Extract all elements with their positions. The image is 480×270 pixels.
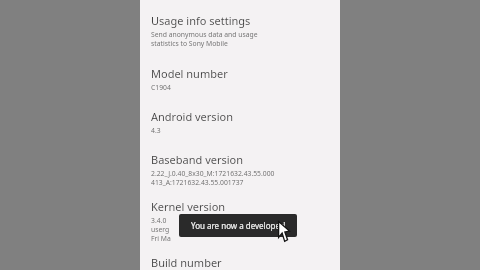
button[interactable]: Usage info settings [151, 13, 335, 48]
staticText: userg [151, 225, 170, 234]
staticText: You are now a developer! [191, 220, 286, 231]
staticText: Usage info settings [151, 13, 251, 28]
button[interactable]: Kernel version [151, 199, 335, 243]
staticText: 4.3 [151, 126, 161, 135]
staticText: Fri Ma [151, 234, 171, 243]
button[interactable]: Build number [151, 255, 335, 270]
button[interactable]: Android version [151, 109, 335, 135]
button[interactable]: Model number [151, 66, 335, 92]
staticText: 413_A:1721632.43.55.001737 [151, 178, 244, 187]
staticText: statistics to Sony Mobile [151, 39, 228, 48]
staticText: C1904 [151, 83, 171, 92]
staticText: 2.22_J.0.40_8x30_M:1721632.43.55.000 [151, 169, 275, 178]
staticText: Baseband version [151, 152, 244, 167]
staticText: Build number [151, 255, 222, 270]
staticText: Kernel version [151, 199, 226, 214]
staticText: Android version [151, 109, 233, 124]
button[interactable]: You are now a developer! [179, 214, 297, 237]
button[interactable]: Baseband version [151, 152, 335, 187]
staticText: 3.4.0 [151, 216, 167, 225]
staticText: Send anonymous data and usage [151, 30, 258, 39]
other: Pointer [277, 221, 293, 242]
staticText: Model number [151, 66, 228, 81]
